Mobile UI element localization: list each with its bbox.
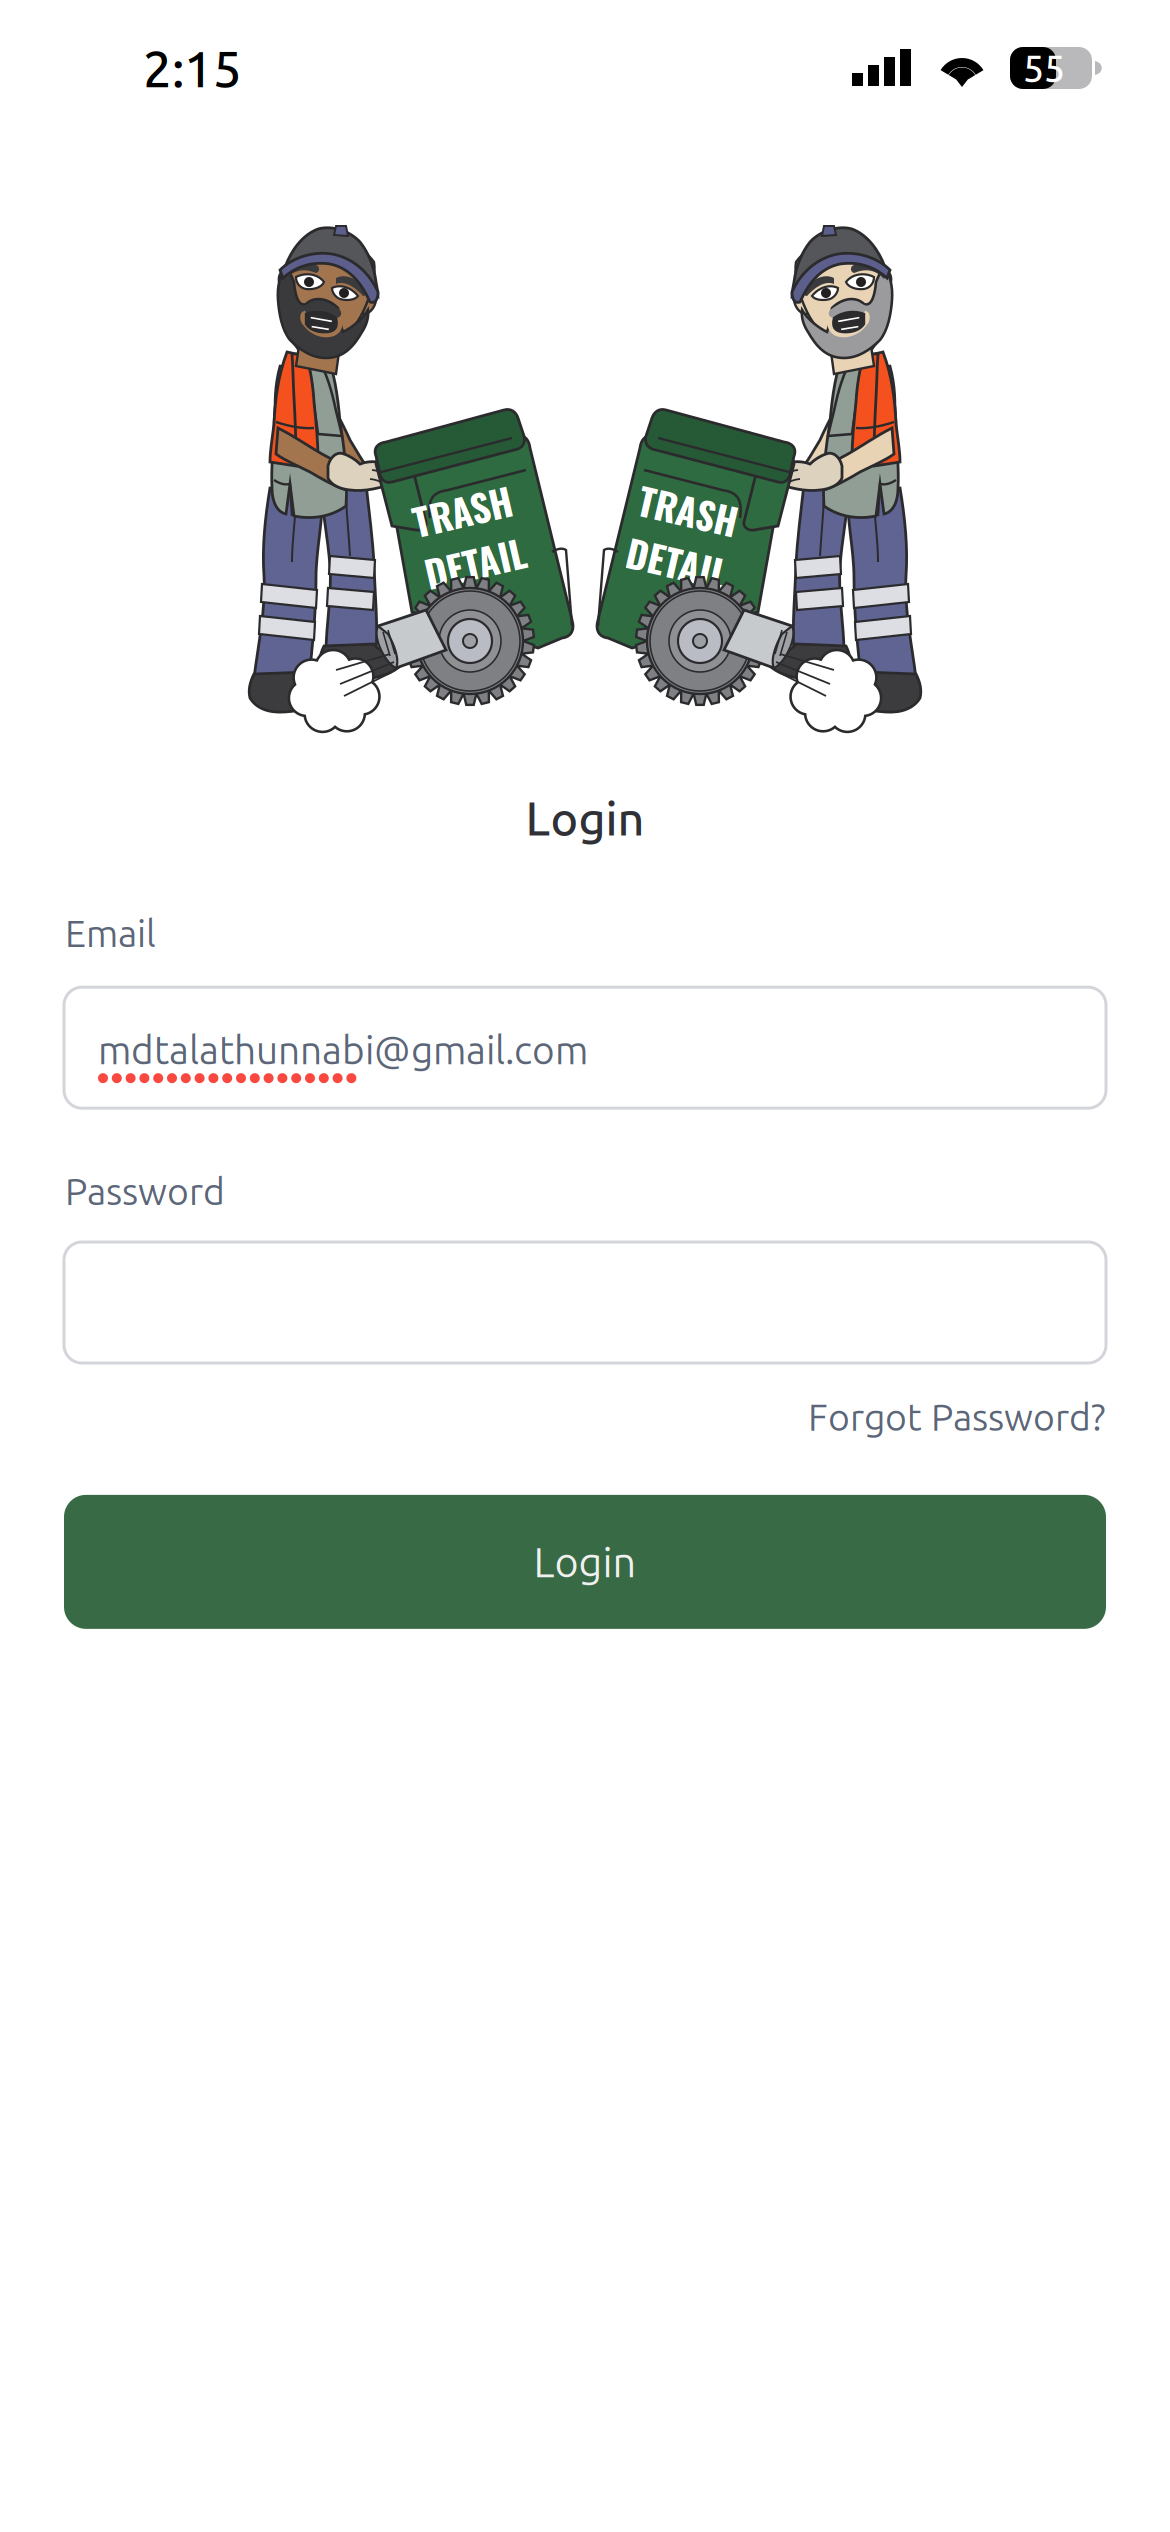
staticText: Login bbox=[525, 792, 644, 844]
button[interactable]: Login bbox=[64, 1495, 1106, 1629]
staticText: TRASH bbox=[418, 482, 519, 537]
staticText: 55 bbox=[1023, 47, 1065, 89]
staticText: 2:15 bbox=[143, 40, 242, 97]
staticText: Login bbox=[533, 1539, 636, 1585]
staticText: Forgot Password? bbox=[808, 1396, 1106, 1438]
staticText: DETAIL bbox=[632, 535, 735, 591]
staticText: TRASH bbox=[632, 482, 733, 537]
staticText: DETAIL bbox=[418, 535, 521, 591]
staticText: Email bbox=[65, 912, 156, 954]
staticText: Password bbox=[65, 1170, 225, 1212]
button[interactable]: Forgot Password? bbox=[808, 1396, 1106, 1438]
staticText: mdtalathunnabi@gmail.com bbox=[98, 1028, 588, 1071]
